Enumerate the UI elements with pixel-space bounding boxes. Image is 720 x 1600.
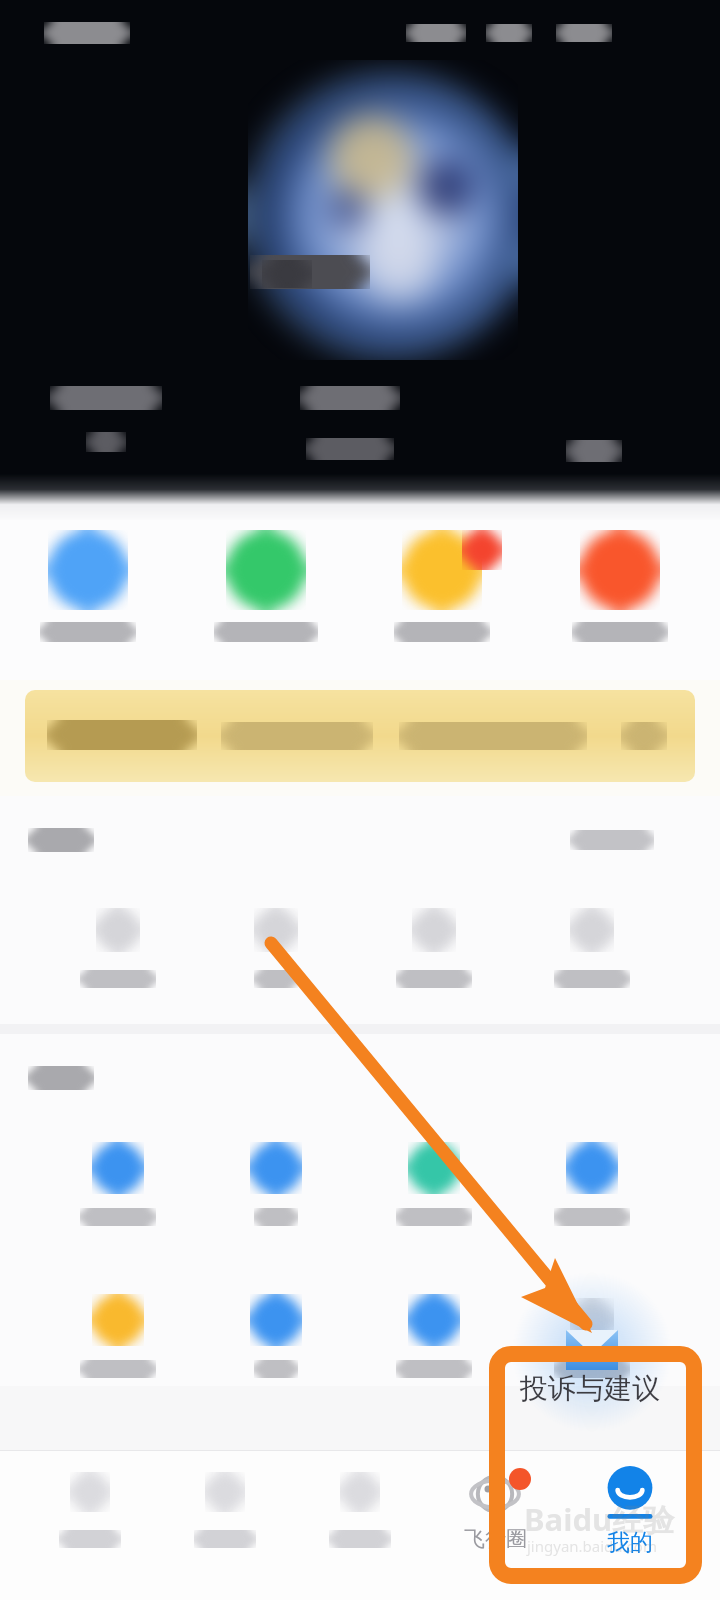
- button[interactable]: Item 2: [212, 904, 340, 1016]
- button[interactable]: Item 4: [528, 1142, 656, 1254]
- button[interactable]: Quick action 1: [30, 526, 146, 674]
- button[interactable]: Item 3: [370, 1142, 498, 1254]
- button[interactable]: Item 4: [528, 904, 656, 1016]
- button[interactable]: Tab 2: [163, 1460, 287, 1568]
- button[interactable]: 飞行圈: [433, 1460, 557, 1568]
- button[interactable]: Quick action 3: [384, 526, 500, 674]
- staticText: 投诉与建议: [520, 1371, 660, 1406]
- staticText: 我的: [607, 1528, 653, 1557]
- button[interactable]: Item 1: [54, 904, 182, 1016]
- button[interactable]: 我的: [568, 1460, 692, 1568]
- button[interactable]: Item 3: [370, 904, 498, 1016]
- button[interactable]: Tab 3: [298, 1460, 422, 1568]
- button[interactable]: 投诉与建议 / 我的: [497, 1354, 694, 1576]
- button[interactable]: Item 8: [528, 1294, 656, 1406]
- button[interactable]: [25, 690, 695, 782]
- staticText: Baidu经验: [524, 1498, 675, 1540]
- button[interactable]: Quick action 4: [562, 526, 678, 674]
- button[interactable]: Item 1: [54, 1142, 182, 1254]
- button[interactable]: Item 2: [212, 1142, 340, 1254]
- button[interactable]: Quick action 2: [208, 526, 324, 674]
- staticText: jingyan.baidu.com: [527, 1536, 657, 1556]
- button[interactable]: Item 7: [370, 1294, 498, 1406]
- button[interactable]: Item 5: [54, 1294, 182, 1406]
- button[interactable]: Item 6: [212, 1294, 340, 1406]
- staticText: 飞行圈: [464, 1526, 527, 1552]
- button[interactable]: Tab 1: [28, 1460, 152, 1568]
